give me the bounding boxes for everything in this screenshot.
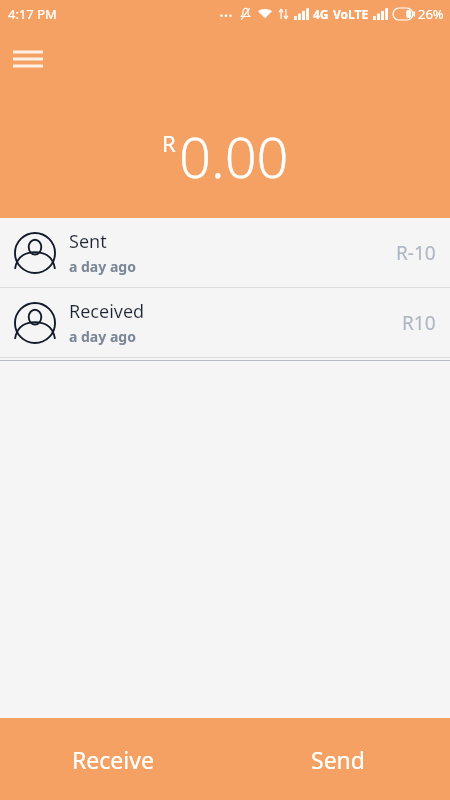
button[interactable]: Received [0,288,450,357]
staticText: Send [311,744,365,775]
button[interactable]: Receive [0,718,225,800]
staticText: R [162,128,176,158]
staticText: 0.00 [179,118,289,194]
staticText: 26% [418,5,444,23]
button[interactable]: Send [225,718,450,800]
staticText: Sent [69,229,107,254]
staticText: R10 [402,310,436,336]
button[interactable]: Open navigation menu [3,42,53,76]
staticText: R-10 [396,240,436,266]
staticText: VoLTE [333,6,369,22]
staticText: a day ago [69,327,136,346]
staticText: 4:17 PM [8,5,57,23]
staticText: a day ago [69,257,136,276]
staticText: Receive [72,744,154,775]
staticText: 4G [313,6,329,22]
staticText: Received [69,299,145,324]
button[interactable]: Sent [0,218,450,287]
